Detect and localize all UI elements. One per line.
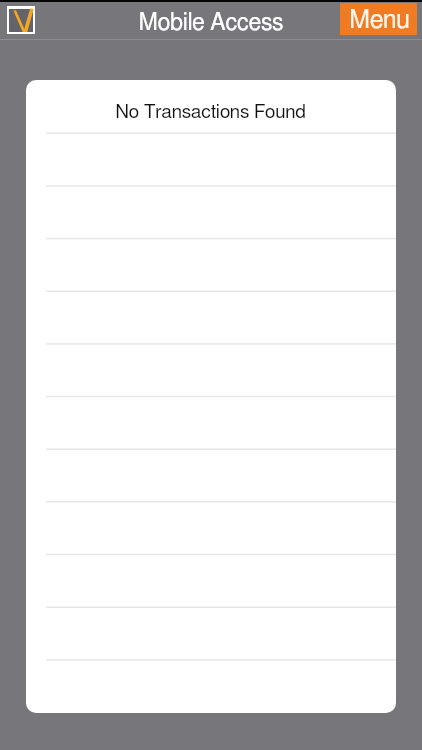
button[interactable] xyxy=(26,504,396,557)
staticText: No Transactions Found xyxy=(115,103,306,122)
button[interactable] xyxy=(26,610,396,663)
staticText: Menu xyxy=(349,8,410,33)
button[interactable] xyxy=(26,451,396,504)
button[interactable]: Menu xyxy=(340,3,417,35)
button[interactable] xyxy=(26,292,396,345)
button[interactable] xyxy=(26,239,396,292)
button[interactable] xyxy=(26,557,396,610)
button[interactable] xyxy=(26,133,396,186)
button[interactable] xyxy=(26,398,396,451)
button[interactable] xyxy=(26,663,396,713)
button[interactable] xyxy=(26,186,396,239)
staticText: Mobile Access xyxy=(0,12,422,35)
button[interactable]: Home xyxy=(7,6,35,34)
button[interactable] xyxy=(26,345,396,398)
